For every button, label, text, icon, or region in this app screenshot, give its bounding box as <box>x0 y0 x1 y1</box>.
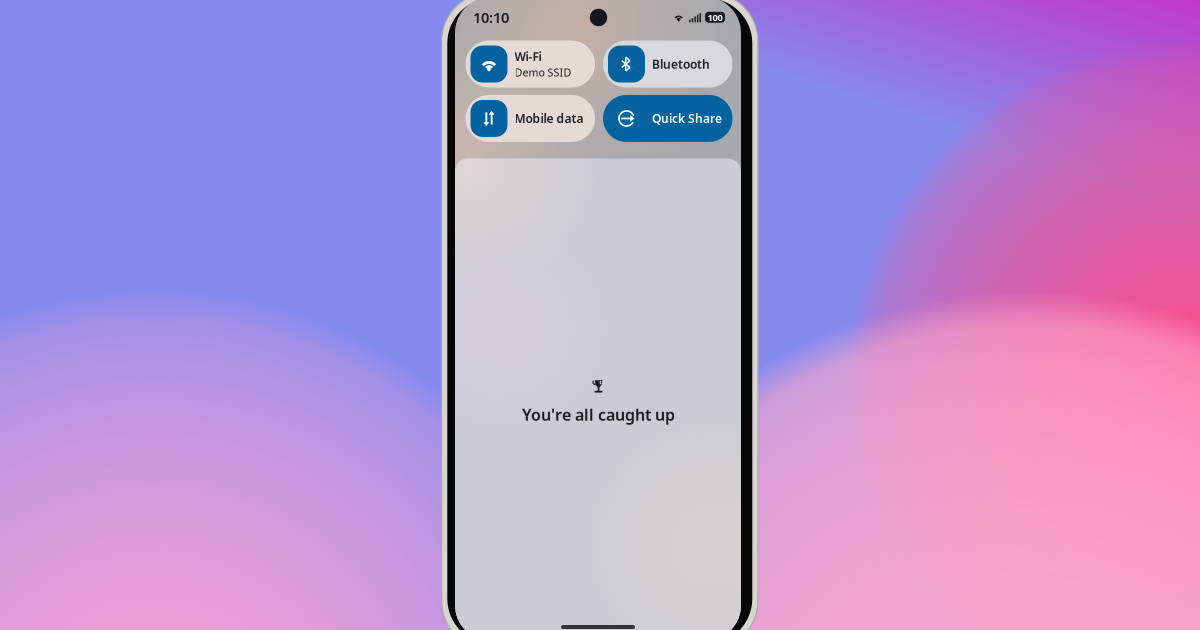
staticText: You're all caught up <box>522 404 675 425</box>
button[interactable]: Bluetooth <box>603 40 732 87</box>
button[interactable]: Wi-Fi <box>465 40 595 87</box>
staticText: Quick Share <box>652 110 722 126</box>
button[interactable]: Mobile data <box>465 95 595 142</box>
staticText: Bluetooth <box>652 56 710 72</box>
staticText: 100 <box>707 11 722 23</box>
staticText: Mobile data <box>514 110 583 126</box>
staticText: Wi-Fi <box>514 49 541 65</box>
staticText: Demo SSID <box>514 65 571 79</box>
staticText: 10:10 <box>473 8 509 27</box>
button[interactable]: Quick Share <box>603 95 732 142</box>
